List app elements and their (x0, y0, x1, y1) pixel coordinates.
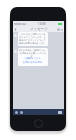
button[interactable]: Home (34, 119, 43, 128)
button[interactable]: ご確認はこちら (24, 57, 42, 60)
button[interactable]: Call (57, 28, 60, 31)
staticText: メッセージ (30, 27, 48, 31)
staticText: 以下の内容をご確認のうえ、 お手続きをお願いいたします。 (18, 49, 48, 58)
button[interactable]: Send (58, 111, 62, 114)
button[interactable]: お問い合わせ窓口 (23, 61, 43, 64)
button[interactable]: Emoji (20, 111, 23, 114)
button[interactable]: Keyboard (15, 111, 18, 114)
button[interactable]: Back (13, 27, 18, 32)
staticText: このたびはご利用いただきありがとうございます。お客様のアカウントについて確認が必… (19, 33, 47, 45)
button[interactable]: このたびはご利用いただきありがとうございます。お客様のアカウントについて確認が必… (18, 32, 48, 46)
staticText: 13:05 (38, 22, 46, 26)
staticText: oooo au (14, 22, 26, 26)
